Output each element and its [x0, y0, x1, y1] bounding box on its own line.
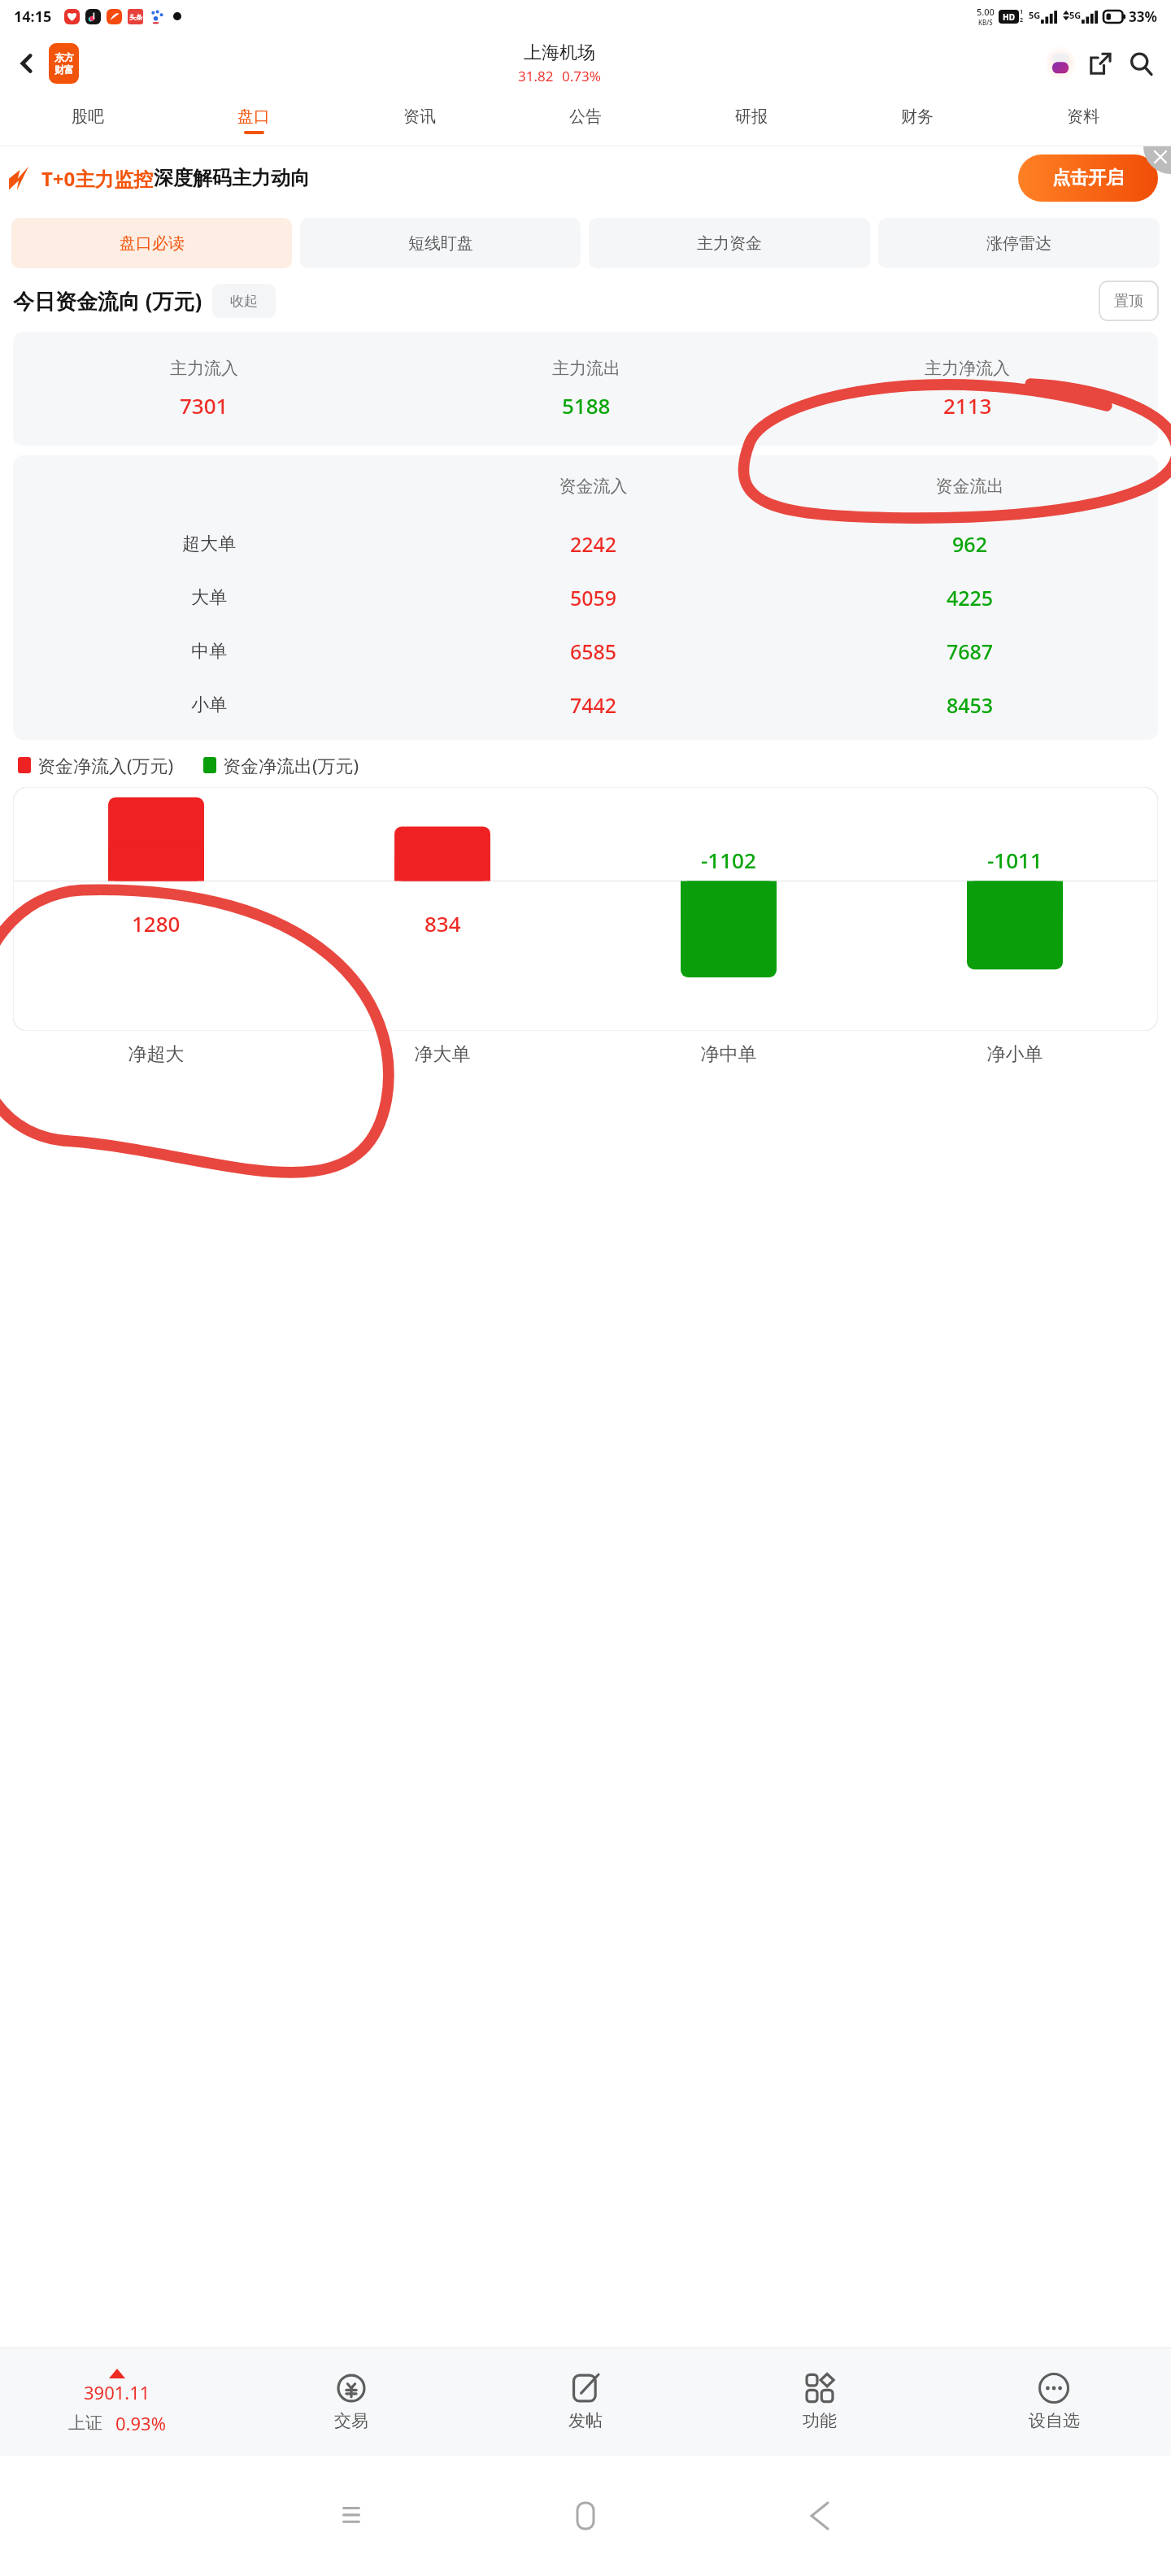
staticText: 2 [1020, 16, 1024, 24]
staticText: 0.93% [115, 2411, 166, 2435]
staticText: 设自选 [1029, 2410, 1080, 2431]
staticText: 5.00 [977, 6, 995, 18]
button[interactable]: 盘口 [171, 94, 337, 146]
staticText: 3901.11 [84, 2380, 150, 2404]
staticText: 7442 [405, 691, 781, 719]
staticText: 资讯 [403, 107, 436, 127]
staticText: 5G [1029, 9, 1041, 21]
staticText: 深度解码主力动向 [154, 166, 310, 190]
button[interactable]: 点击开启 [1018, 154, 1158, 202]
staticText: 上海机场 [524, 41, 595, 64]
staticText: 盘口 [237, 107, 270, 127]
button[interactable]: 盘口必读 [11, 218, 292, 268]
staticText: 净超大 [13, 1042, 299, 1066]
staticText: 2242 [405, 530, 781, 558]
button[interactable]: 3901.11 [0, 2348, 234, 2456]
button[interactable]: 财务 [834, 94, 1000, 146]
staticText: 股吧 [72, 107, 104, 127]
button[interactable]: 1280 [13, 787, 1158, 1031]
staticText: 14:15 [14, 7, 52, 27]
button[interactable]: 置顶 [1099, 281, 1158, 320]
staticText: 研报 [735, 107, 768, 127]
button[interactable]: Close ad [1143, 146, 1171, 174]
staticText: 834 [424, 909, 461, 938]
staticText: 31.82 [518, 67, 554, 85]
staticText: 涨停雷达 [986, 233, 1051, 254]
button[interactable]: 股吧 [5, 94, 171, 146]
staticText: 1280 [132, 909, 181, 938]
staticText: 7301 [180, 391, 229, 420]
staticText: 7687 [781, 637, 1158, 665]
staticText: 6585 [405, 637, 781, 665]
staticText: 财务 [901, 107, 934, 127]
button[interactable]: 短线盯盘 [300, 218, 581, 268]
staticText: 今日资金流向 (万元) [13, 286, 202, 315]
staticText: HD [1003, 11, 1015, 23]
staticText: 主力净流入 [925, 358, 1010, 379]
button[interactable]: Home [468, 2503, 703, 2529]
staticText: 净中单 [585, 1042, 872, 1066]
staticText: 主力流入 [170, 358, 238, 379]
staticText: KB/S [978, 18, 993, 27]
staticText: 小单 [191, 694, 227, 716]
button[interactable]: Search [1121, 43, 1161, 84]
staticText: 净小单 [872, 1042, 1158, 1066]
staticText: 8453 [781, 691, 1158, 719]
staticText: 上证 [68, 2413, 102, 2434]
staticText: 资金流入 [405, 476, 781, 497]
button[interactable]: AI assistant [1041, 44, 1080, 83]
button[interactable]: 研报 [668, 94, 834, 146]
staticText: T+0主力监控 [41, 165, 154, 192]
button[interactable]: T+0主力监控 [8, 146, 1158, 210]
button[interactable]: 东方 [49, 43, 79, 84]
button[interactable]: 资讯 [337, 94, 503, 146]
staticText: 交易 [334, 2410, 368, 2431]
staticText: 功能 [803, 2410, 837, 2431]
button[interactable]: 功能 [703, 2348, 937, 2456]
staticText: 中单 [191, 640, 227, 663]
staticText: 资料 [1067, 107, 1099, 127]
staticText: 主力资金 [697, 233, 762, 254]
button[interactable]: Back [5, 41, 49, 85]
staticText: 财富 [54, 63, 74, 76]
staticText: 资金流出 [781, 476, 1158, 497]
staticText: 5G [1069, 9, 1082, 21]
button[interactable]: 交易 [234, 2348, 468, 2456]
button[interactable]: 收起 [212, 284, 276, 318]
staticText: 1 [1020, 8, 1024, 16]
button[interactable]: 发帖 [468, 2348, 703, 2456]
button[interactable]: 资料 [1000, 94, 1166, 146]
staticText: 东方 [54, 51, 74, 63]
button[interactable]: Recents [234, 2507, 468, 2525]
button[interactable]: 主力资金 [589, 218, 870, 268]
staticText: 头条 [129, 13, 142, 21]
staticText: 置顶 [1114, 292, 1143, 311]
staticText: 短线盯盘 [408, 233, 473, 254]
button[interactable]: 资金流入 [13, 455, 1158, 740]
staticText: 主力流出 [552, 358, 620, 379]
staticText: 5188 [562, 391, 611, 420]
staticText: 大单 [191, 586, 227, 609]
staticText: 33% [1129, 7, 1157, 26]
staticText: 发帖 [568, 2410, 603, 2431]
staticText: 点击开启 [1052, 167, 1124, 189]
button[interactable]: 涨停雷达 [878, 218, 1160, 268]
staticText: 5059 [405, 584, 781, 611]
button[interactable]: 主力流入 [13, 332, 1158, 446]
staticText: 2113 [943, 391, 992, 420]
staticText: 公告 [569, 107, 602, 127]
staticText: -1011 [987, 846, 1043, 874]
staticText: 超大单 [182, 533, 236, 555]
staticText: 962 [781, 530, 1158, 558]
button[interactable]: 公告 [503, 94, 668, 146]
staticText: 净大单 [299, 1042, 585, 1066]
staticText: 盘口必读 [120, 233, 185, 254]
staticText: -1102 [701, 846, 756, 874]
button[interactable]: Share [1080, 43, 1121, 84]
staticText: 4225 [781, 584, 1158, 611]
button[interactable]: 设自选 [937, 2348, 1171, 2456]
staticText: 资金净流入(万元) [37, 753, 174, 777]
staticText: 0.73% [562, 67, 601, 85]
staticText: 资金净流出(万元) [223, 753, 359, 777]
button[interactable]: Back [703, 2503, 937, 2529]
